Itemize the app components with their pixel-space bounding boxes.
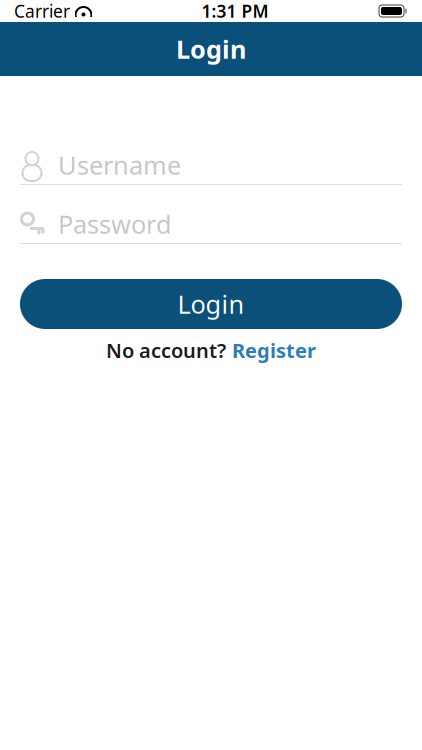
staticText: Login (177, 287, 244, 321)
button[interactable]: Register (226, 337, 316, 364)
staticText: Username (58, 148, 181, 182)
staticText: No account? (106, 337, 226, 364)
staticText: Carrier (14, 0, 70, 22)
staticText: Login (176, 32, 246, 66)
staticText: Password (58, 207, 172, 241)
button[interactable]: Login (20, 279, 402, 329)
staticText: 1:31 PM (201, 0, 268, 22)
staticText: Register (232, 337, 316, 364)
